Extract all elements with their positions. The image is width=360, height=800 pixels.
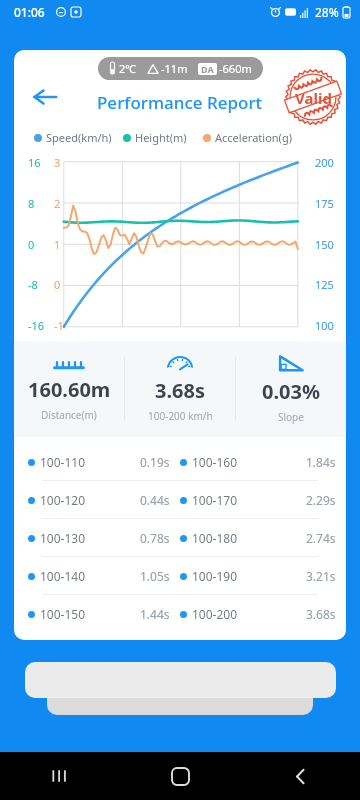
staticText: 3.21s [306, 568, 336, 584]
button[interactable]: 0.03% [236, 341, 346, 437]
staticText: 1.44s [140, 606, 170, 622]
button[interactable]: 160.60m [14, 341, 124, 437]
staticText: 160.60m [28, 376, 111, 403]
staticText: 3.68s [155, 377, 205, 404]
button[interactable]: 100-130 [14, 519, 346, 556]
staticText: 0 [28, 237, 35, 252]
button[interactable]: Back [26, 78, 64, 116]
staticText: 16 [28, 155, 41, 170]
staticText: 1 [54, 237, 61, 252]
staticText: -16 [28, 318, 45, 333]
staticText: Speed(km/h) [46, 130, 112, 145]
staticText: 2 [54, 196, 61, 211]
staticText: 100-130 [40, 530, 86, 546]
staticText: 0.78s [140, 530, 170, 546]
staticText: 100-200 km/h [148, 409, 213, 423]
staticText: 200 [315, 155, 334, 170]
button[interactable]: 100-120 [14, 481, 346, 518]
staticText: 175 [315, 196, 334, 211]
button[interactable]: Home [120, 752, 240, 800]
staticText: DA [201, 63, 214, 75]
button[interactable]: Recent apps [0, 752, 120, 800]
staticText: Distance(m) [41, 408, 97, 422]
staticText: 100-170 [192, 492, 238, 508]
staticText: 0 [54, 277, 61, 292]
staticText: 2.29s [306, 492, 336, 508]
button[interactable]: 100-140 [14, 557, 346, 594]
staticText: Slope [278, 410, 304, 424]
staticText: 150 [315, 237, 334, 252]
staticText: 0.44s [140, 492, 170, 508]
staticText: 100-160 [192, 454, 238, 470]
button[interactable]: 100-150 [14, 595, 346, 632]
staticText: 0.19s [140, 454, 170, 470]
staticText: 8 [28, 196, 35, 211]
staticText: 1.84s [306, 454, 336, 470]
staticText: Height(m) [135, 130, 187, 145]
staticText: 100-110 [40, 454, 86, 470]
staticText: Acceleration(g) [215, 130, 292, 145]
staticText: -660m [219, 61, 252, 76]
staticText: Performance Report [97, 91, 263, 114]
staticText: 100-190 [192, 568, 238, 584]
staticText: 01:06 [14, 4, 45, 20]
staticText: 28% [315, 4, 339, 20]
staticText: -1 [54, 318, 64, 333]
staticText: 100-150 [40, 606, 86, 622]
staticText: 2.74s [306, 530, 336, 546]
button[interactable]: 3.68s [125, 341, 235, 437]
staticText: 100-120 [40, 492, 86, 508]
staticText: 100-140 [40, 568, 86, 584]
staticText: 3.68s [306, 606, 336, 622]
staticText: 0.03% [262, 378, 320, 405]
staticText: 3 [54, 155, 61, 170]
staticText: -8 [28, 277, 38, 292]
staticText: 100 [315, 318, 334, 333]
staticText: 100-200 [192, 606, 238, 622]
button[interactable]: Back [240, 752, 360, 800]
staticText: 125 [315, 277, 334, 292]
staticText: Valid [295, 88, 332, 108]
staticText: 2℃ [119, 61, 137, 76]
staticText: -11m [161, 61, 188, 76]
staticText: 100-180 [192, 530, 238, 546]
button[interactable]: 100-110 [14, 443, 346, 480]
staticText: 1.05s [140, 568, 170, 584]
